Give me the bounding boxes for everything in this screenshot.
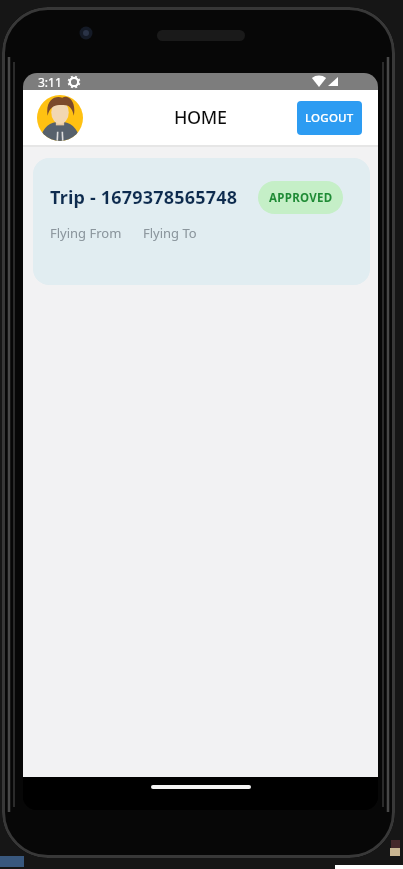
button[interactable]: LOGOUT xyxy=(297,101,362,135)
button[interactable]: Trip - 1679378565748 xyxy=(33,158,370,285)
button[interactable] xyxy=(37,95,83,141)
staticText: 3:11 xyxy=(38,74,62,90)
staticText: Flying To xyxy=(143,224,197,242)
staticText: LOGOUT xyxy=(305,110,354,126)
staticText: Trip - 1679378565748 xyxy=(50,185,238,210)
staticText: HOME xyxy=(174,105,227,130)
staticText: Flying From xyxy=(50,224,122,242)
staticText: APPROVED xyxy=(269,190,333,206)
